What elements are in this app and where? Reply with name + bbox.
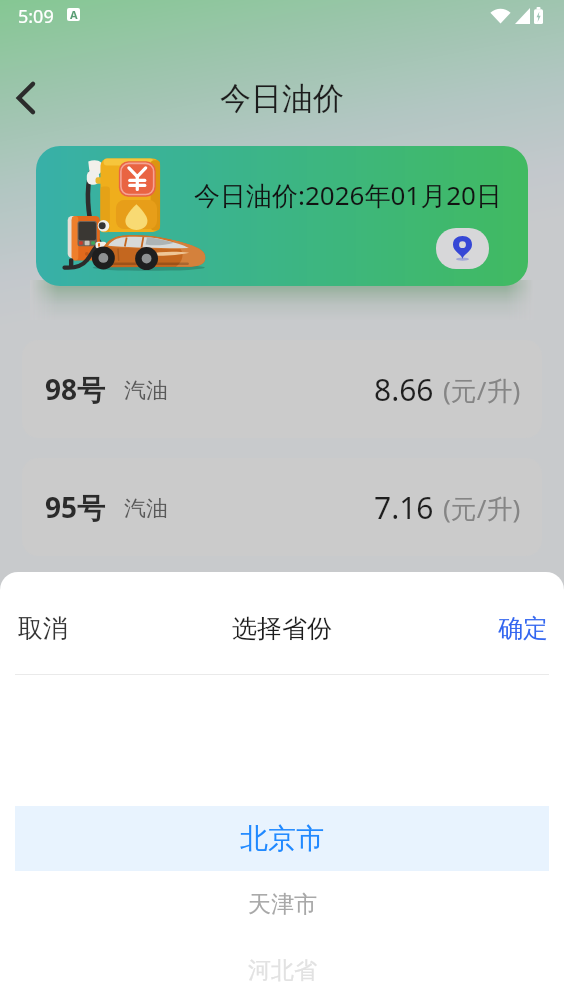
- staticText: 95号: [45, 488, 106, 526]
- staticText: 汽油: [124, 495, 168, 523]
- staticText: (元/升): [443, 372, 521, 408]
- staticText: 确定: [498, 613, 548, 644]
- staticText: 汽油: [124, 377, 168, 405]
- staticText: 7.16: [374, 487, 434, 528]
- staticText: 5:09: [18, 4, 54, 29]
- button[interactable]: Location: [436, 228, 489, 269]
- button[interactable]: 取消: [0, 596, 82, 660]
- staticText: 天津市: [248, 890, 317, 919]
- staticText: 河北省: [248, 956, 317, 985]
- button[interactable]: 北京市: [0, 806, 564, 871]
- button[interactable]: 河北省: [0, 938, 564, 1003]
- button[interactable]: 95号: [22, 458, 542, 556]
- button[interactable]: 天津市: [0, 872, 564, 937]
- button[interactable]: 确定: [484, 596, 564, 660]
- staticText: 选择省份: [232, 613, 332, 644]
- staticText: 取消: [18, 613, 68, 644]
- staticText: 北京市: [240, 821, 324, 856]
- button[interactable]: 今日油价:2026年01月20日: [36, 146, 528, 286]
- staticText: (元/升): [443, 490, 521, 526]
- button[interactable]: Back: [0, 72, 52, 124]
- staticText: 今日油价: [220, 79, 344, 118]
- staticText: A: [70, 8, 78, 20]
- staticText: 今日油价:2026年01月20日: [194, 177, 502, 213]
- staticText: 8.66: [374, 369, 434, 410]
- button[interactable]: 98号: [22, 340, 542, 438]
- staticText: 98号: [45, 370, 106, 408]
